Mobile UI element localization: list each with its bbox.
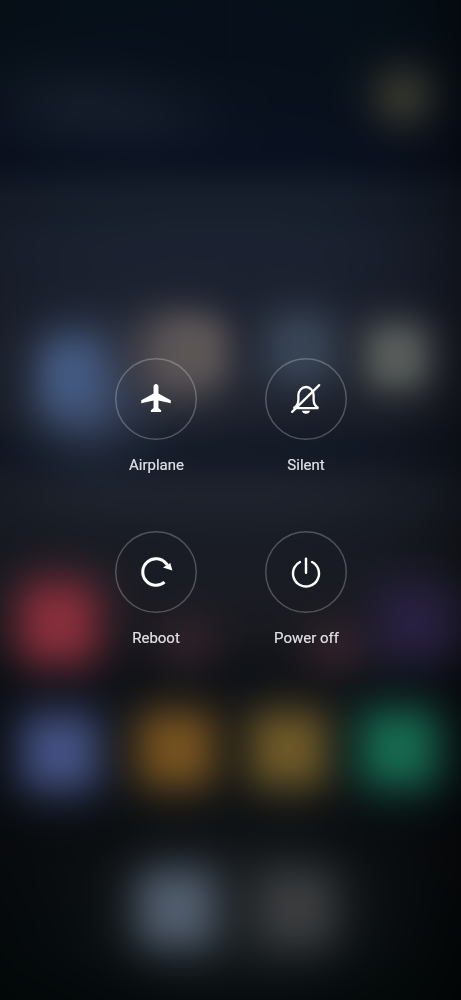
button[interactable]: Reboot [115,531,197,647]
button[interactable]: Silent [265,358,347,474]
button[interactable]: Power off [265,531,347,647]
staticText: Airplane [129,456,184,474]
button[interactable]: Airplane [115,358,197,474]
staticText: Reboot [132,629,180,647]
staticText: Silent [287,456,325,474]
staticText: Power off [274,629,339,647]
